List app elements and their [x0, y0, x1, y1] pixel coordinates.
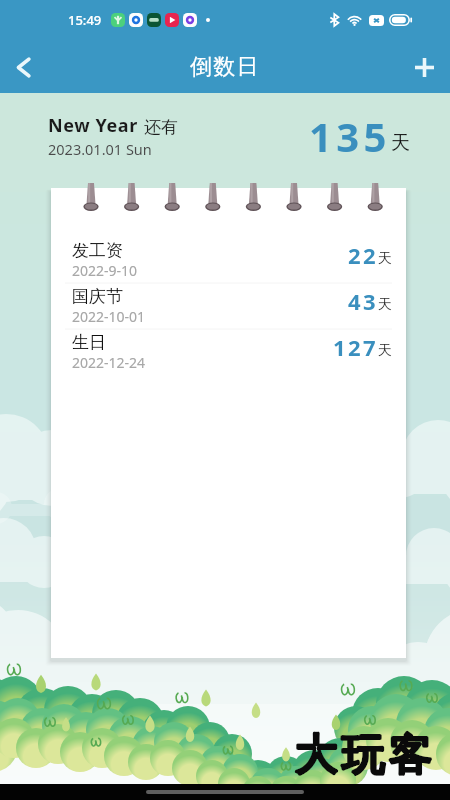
button[interactable]: Back [0, 44, 46, 90]
button[interactable]: 生日 [51, 329, 406, 375]
staticText: 发工资 [72, 240, 123, 261]
staticText: 2023.01.01 Sun [48, 139, 152, 159]
staticText: New Year [48, 113, 144, 138]
staticText: 2022-10-01 [72, 307, 146, 326]
button[interactable]: 国庆节 [51, 283, 406, 329]
button[interactable]: 发工资 [51, 237, 406, 283]
staticText: 127 [333, 332, 378, 362]
staticText: 国庆节 [72, 286, 123, 307]
staticText: 22 [348, 240, 378, 270]
staticText: 135 [309, 109, 391, 163]
staticText: 生日 [72, 332, 106, 353]
staticText: 还有 [144, 117, 178, 138]
staticText: 2022-9-10 [72, 261, 138, 280]
staticText: 倒数日 [190, 53, 260, 81]
staticText: 2022-12-24 [72, 353, 146, 372]
staticText: 天 [378, 250, 392, 268]
staticText: 天 [378, 342, 392, 360]
staticText: 43 [348, 286, 378, 316]
staticText: 大玩客 [293, 728, 434, 782]
button[interactable]: Add [401, 44, 447, 90]
staticText: 天 [378, 296, 392, 314]
staticText: 天 [391, 131, 410, 155]
staticText: 15:49 [68, 11, 102, 29]
